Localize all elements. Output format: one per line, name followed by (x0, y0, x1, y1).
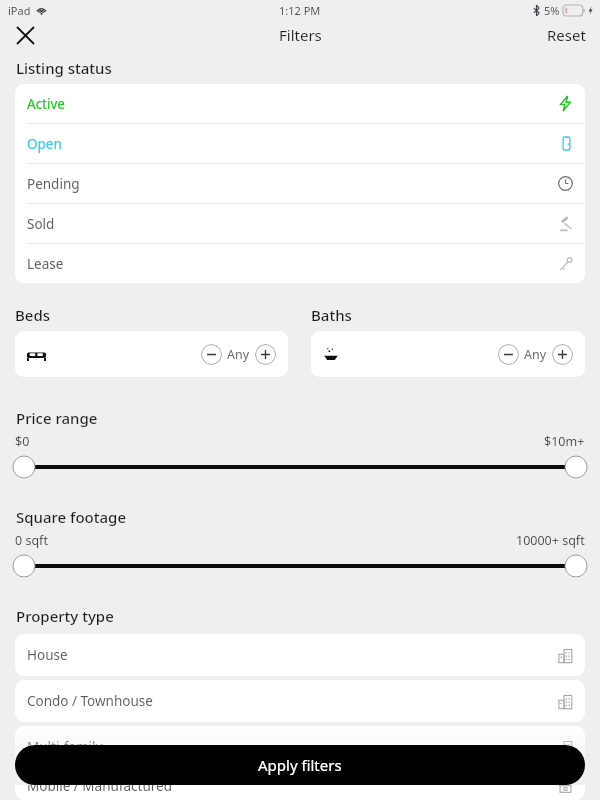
staticText: Price range (16, 408, 98, 428)
button[interactable]: Decrease (15, 331, 288, 377)
staticText: iPad (8, 3, 31, 18)
staticText: Active (27, 95, 65, 113)
staticText: Lease (27, 255, 64, 273)
staticText: Property type (16, 606, 114, 626)
button[interactable]: Apply filters (15, 745, 585, 785)
button[interactable]: Multi-family (15, 726, 585, 768)
staticText: Listing status (16, 58, 112, 78)
staticText: Reset (547, 25, 586, 45)
staticText: $10m+ (544, 433, 585, 450)
staticText: Open (27, 135, 62, 153)
button[interactable]: Active (15, 84, 585, 124)
button[interactable]: House (15, 634, 585, 676)
staticText: House (27, 646, 68, 664)
staticText: 5% (544, 3, 560, 18)
button[interactable]: Open (15, 124, 585, 164)
button[interactable]: Range slider (0, 553, 600, 579)
button[interactable]: Range slider (0, 454, 600, 480)
button[interactable]: Reset (533, 21, 600, 49)
button[interactable]: Mobile / Manufactured (15, 772, 585, 800)
staticText: 0 sqft (15, 532, 48, 549)
button[interactable]: Decrease (498, 344, 519, 365)
button[interactable]: Pending (15, 164, 585, 204)
staticText: Apply filters (258, 755, 342, 775)
staticText: Any (524, 346, 547, 363)
button[interactable]: Sold (15, 204, 585, 244)
button[interactable]: Decrease (311, 331, 585, 377)
staticText: Multi-family (27, 738, 103, 756)
staticText: Sold (27, 215, 55, 233)
staticText: Pending (27, 175, 80, 193)
button[interactable]: Close (9, 20, 41, 50)
button[interactable]: Condo / Townhouse (15, 680, 585, 722)
button[interactable]: Increase (552, 344, 573, 365)
button[interactable]: Decrease (201, 344, 222, 365)
staticText: Beds (15, 305, 51, 325)
staticText: Filters (279, 25, 322, 45)
button[interactable]: Lease (15, 244, 585, 283)
staticText: 10000+ sqft (516, 532, 585, 549)
staticText: Square footage (16, 507, 127, 527)
button[interactable]: Increase (255, 344, 276, 365)
staticText: Mobile / Manufactured (27, 777, 172, 795)
staticText: Baths (311, 305, 352, 325)
staticText: Any (227, 346, 250, 363)
staticText: 1:12 PM (279, 3, 321, 18)
staticText: $0 (15, 433, 30, 450)
staticText: Condo / Townhouse (27, 692, 153, 710)
